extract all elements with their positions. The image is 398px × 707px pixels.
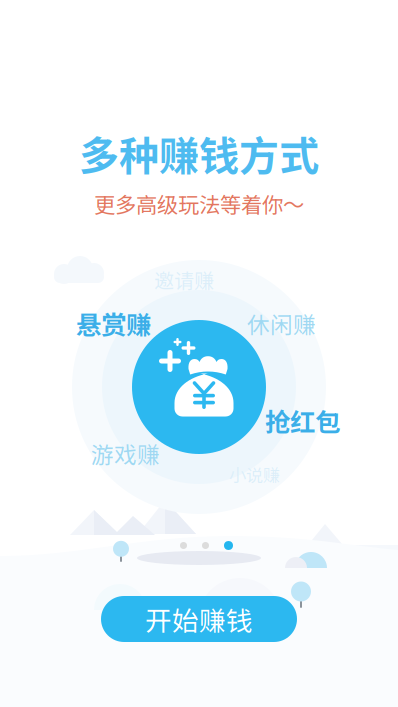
staticText: 更多高级玩法等着你～: [94, 188, 304, 219]
staticText: 休闲赚: [247, 307, 316, 340]
staticText: 悬赏赚: [76, 305, 151, 342]
staticText: 游戏赚: [91, 437, 160, 470]
staticText: 开始赚钱: [145, 600, 253, 638]
staticText: 邀请赚: [154, 265, 214, 294]
button[interactable]: 开始赚钱: [101, 596, 297, 642]
staticText: 抢红包: [265, 402, 340, 439]
staticText: 多种赚钱方式: [79, 124, 319, 182]
staticText: 小说赚: [229, 462, 280, 487]
